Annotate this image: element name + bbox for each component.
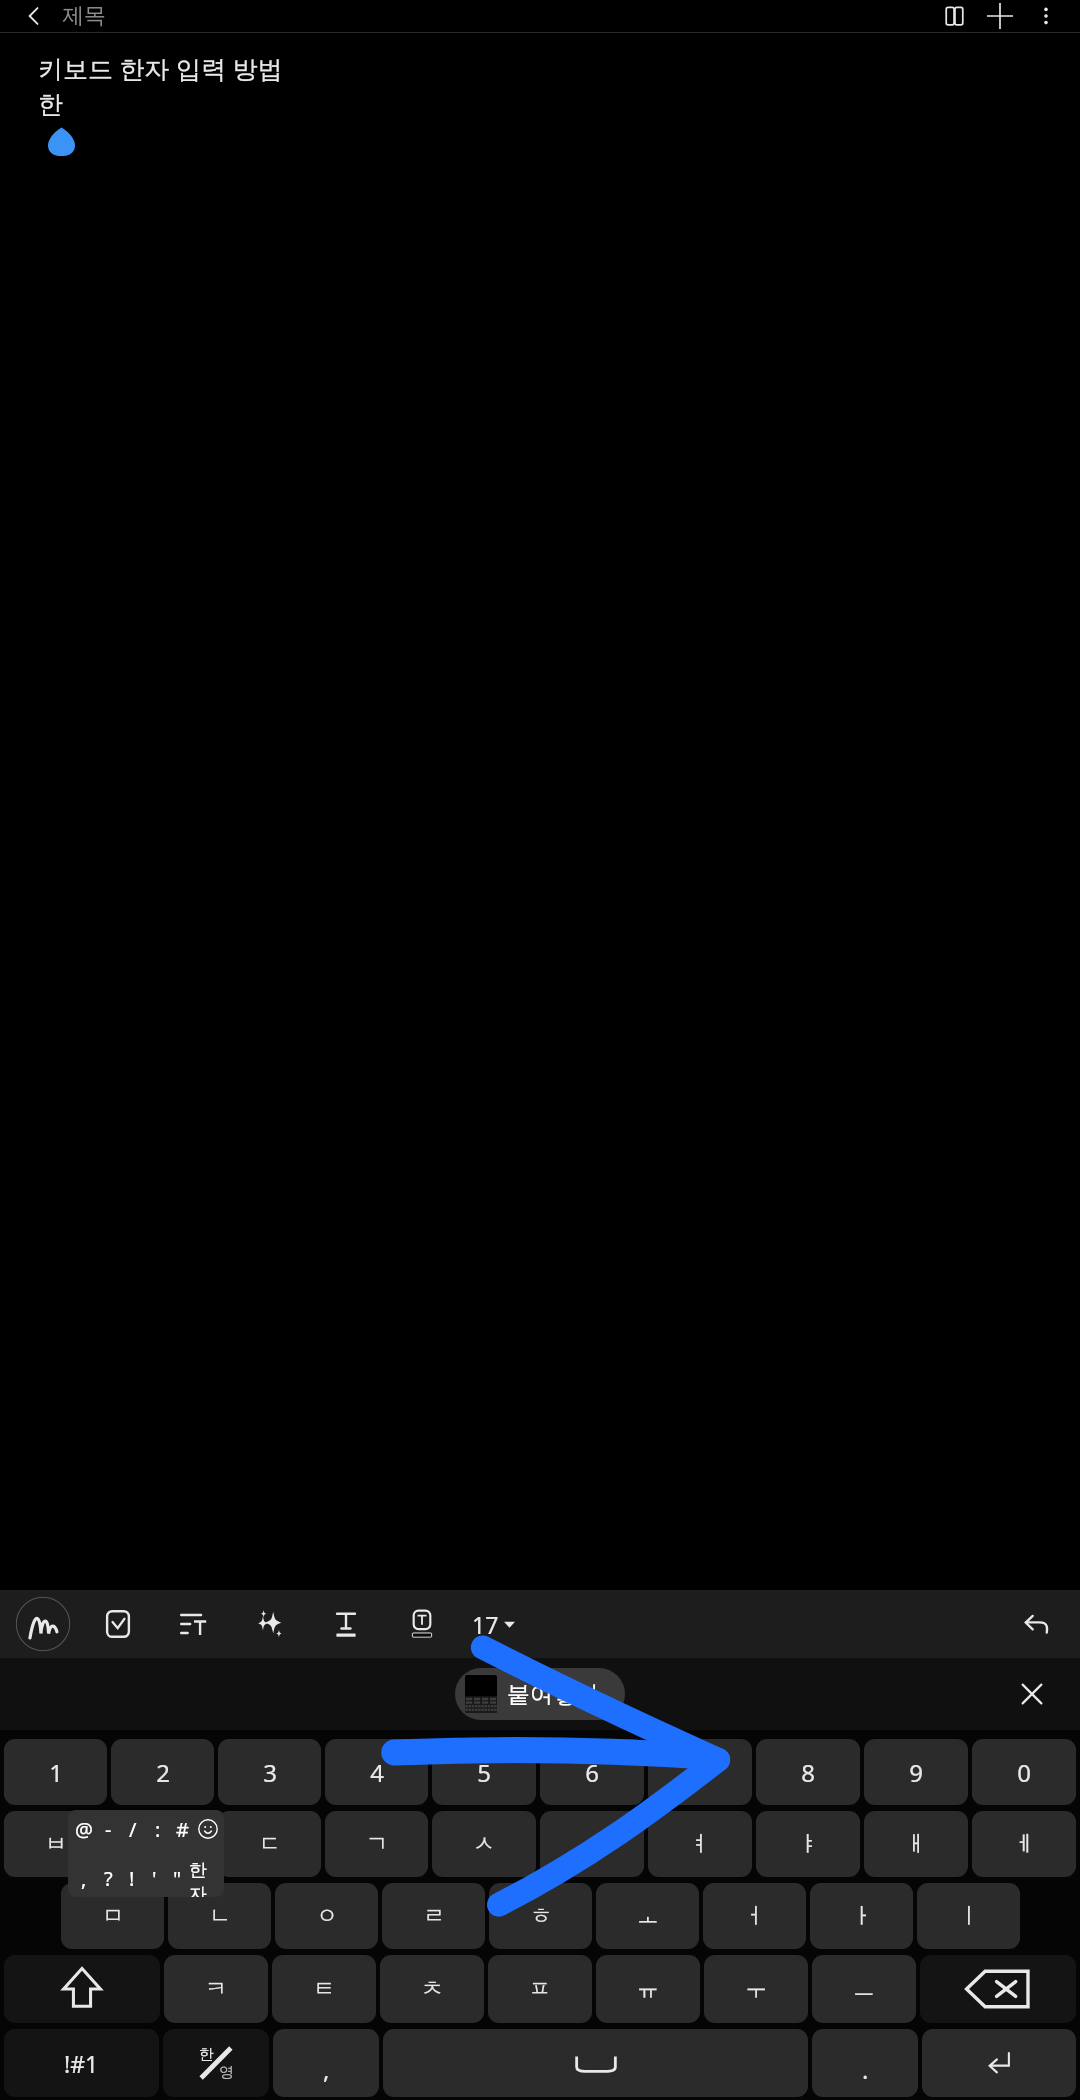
button[interactable]: ! bbox=[120, 1859, 143, 1897]
staticText: 한 bbox=[38, 89, 63, 120]
button[interactable]: 한자 bbox=[189, 1859, 220, 1897]
button[interactable]: ㅎ bbox=[489, 1883, 592, 1949]
button[interactable]: ㅅ bbox=[432, 1811, 536, 1877]
button[interactable]: 8 bbox=[756, 1739, 860, 1805]
staticText: ㅋ bbox=[205, 1975, 227, 2003]
button[interactable]: AI assist bbox=[239, 1593, 301, 1655]
staticText: ! bbox=[129, 1865, 135, 1892]
button[interactable]: Paragraph style bbox=[163, 1593, 225, 1655]
button[interactable]: Checklist bbox=[87, 1593, 149, 1655]
button[interactable]: / bbox=[120, 1810, 145, 1848]
button[interactable]: Shift bbox=[4, 1955, 160, 2023]
staticText: 2 bbox=[156, 1756, 170, 1789]
button[interactable]: Handwriting bbox=[12, 1593, 74, 1655]
button[interactable]: ㅜ bbox=[704, 1955, 808, 2023]
button[interactable]: Backspace bbox=[920, 1955, 1076, 2023]
button[interactable]: ㄹ bbox=[382, 1883, 485, 1949]
button[interactable]: Close bbox=[1006, 1668, 1058, 1720]
staticText: , bbox=[81, 1865, 87, 1892]
button[interactable]: 1 bbox=[4, 1739, 107, 1805]
button[interactable]: ㄱ bbox=[325, 1811, 428, 1877]
button[interactable]: Undo bbox=[1008, 1596, 1064, 1652]
button[interactable]: ㅍ bbox=[488, 1955, 592, 2023]
staticText: ㄴ bbox=[209, 1902, 231, 1930]
button[interactable]: 7 bbox=[648, 1739, 752, 1805]
staticText: ㅊ bbox=[421, 1975, 443, 2003]
staticText: 17 bbox=[472, 1609, 499, 1640]
button[interactable]: ㅈ bbox=[111, 1811, 214, 1877]
button[interactable]: # bbox=[170, 1810, 195, 1848]
button[interactable]: ㅛ bbox=[540, 1811, 644, 1877]
button[interactable]: ㅓ bbox=[703, 1883, 806, 1949]
button[interactable]: 6 bbox=[540, 1739, 644, 1805]
button[interactable]: , bbox=[72, 1859, 96, 1897]
button[interactable]: ㅋ bbox=[164, 1955, 268, 2023]
button[interactable]: ㅔ bbox=[972, 1811, 1076, 1877]
staticText: 붙여넣기 bbox=[507, 1680, 599, 1709]
button[interactable]: ㅊ bbox=[380, 1955, 484, 2023]
button[interactable]: More options bbox=[1024, 0, 1068, 32]
staticText: ㅈ bbox=[152, 1830, 174, 1858]
button[interactable]: " bbox=[166, 1859, 189, 1897]
button[interactable]: Korean English toggle bbox=[163, 2029, 269, 2097]
button[interactable]: ㅐ bbox=[864, 1811, 968, 1877]
button[interactable]: , bbox=[273, 2029, 379, 2097]
button[interactable]: Reading mode bbox=[932, 0, 976, 32]
button[interactable]: Back bbox=[14, 0, 54, 32]
button[interactable]: ㅇ bbox=[275, 1883, 378, 1949]
button[interactable]: Text color bbox=[315, 1593, 377, 1655]
staticText: . bbox=[862, 2053, 869, 2086]
staticText: ㅕ bbox=[689, 1830, 711, 1858]
staticText: @ bbox=[75, 1816, 93, 1843]
button[interactable]: ㄷ bbox=[218, 1811, 321, 1877]
button[interactable]: 4 bbox=[325, 1739, 428, 1805]
staticText: ? bbox=[104, 1865, 113, 1892]
button[interactable]: . bbox=[812, 2029, 918, 2097]
button[interactable]: Emoji bbox=[195, 1810, 220, 1848]
button[interactable]: 붙여넣기 bbox=[455, 1668, 625, 1720]
button[interactable]: ㅠ bbox=[596, 1955, 700, 2023]
staticText: ㅏ bbox=[851, 1902, 873, 1930]
staticText: 키보드 한자 입력 방법 bbox=[38, 51, 283, 85]
staticText: ㅜ bbox=[745, 1975, 767, 2003]
staticText: 6 bbox=[585, 1756, 599, 1789]
button[interactable]: Enter bbox=[922, 2029, 1076, 2097]
button[interactable]: ㅑ bbox=[756, 1811, 860, 1877]
button[interactable]: ? bbox=[96, 1859, 120, 1897]
button[interactable]: 9 bbox=[864, 1739, 968, 1805]
staticText: ㅌ bbox=[313, 1975, 335, 2003]
staticText: 9 bbox=[909, 1756, 923, 1789]
button[interactable]: ㅂ bbox=[4, 1811, 107, 1877]
button[interactable]: ㅗ bbox=[596, 1883, 699, 1949]
staticText: ' bbox=[152, 1865, 157, 1892]
button[interactable]: @ bbox=[72, 1810, 96, 1848]
button[interactable]: 3 bbox=[218, 1739, 321, 1805]
button[interactable]: Highlight bbox=[391, 1593, 453, 1655]
staticText: 8 bbox=[801, 1756, 815, 1789]
button[interactable]: ㅏ bbox=[810, 1883, 913, 1949]
button[interactable]: 2 bbox=[111, 1739, 214, 1805]
button[interactable]: ㄴ bbox=[168, 1883, 271, 1949]
button[interactable]: Space bbox=[383, 2029, 808, 2097]
button[interactable]: : bbox=[145, 1810, 170, 1848]
button[interactable]: - bbox=[96, 1810, 120, 1848]
button[interactable]: ㅁ bbox=[61, 1883, 164, 1949]
staticText: ㄱ bbox=[366, 1830, 388, 1858]
staticText: ㅣ bbox=[958, 1902, 980, 1930]
button[interactable]: ㅣ bbox=[917, 1883, 1020, 1949]
staticText: ㅔ bbox=[1013, 1830, 1035, 1858]
staticText: ㅐ bbox=[905, 1830, 927, 1858]
button[interactable]: ㅕ bbox=[648, 1811, 752, 1877]
staticText: 한자 bbox=[189, 1859, 220, 1897]
staticText: 1 bbox=[49, 1756, 63, 1789]
button[interactable]: ㅡ bbox=[812, 1955, 916, 2023]
staticText: ㅡ bbox=[853, 1975, 875, 2003]
button[interactable]: ' bbox=[143, 1859, 166, 1897]
button[interactable]: 17 bbox=[466, 1594, 521, 1654]
button[interactable]: 0 bbox=[972, 1739, 1076, 1805]
button[interactable]: ㅌ bbox=[272, 1955, 376, 2023]
staticText: 0 bbox=[1017, 1756, 1031, 1789]
button[interactable]: !#1 bbox=[4, 2029, 159, 2097]
button[interactable]: 5 bbox=[432, 1739, 536, 1805]
button[interactable]: Add bbox=[976, 0, 1024, 32]
